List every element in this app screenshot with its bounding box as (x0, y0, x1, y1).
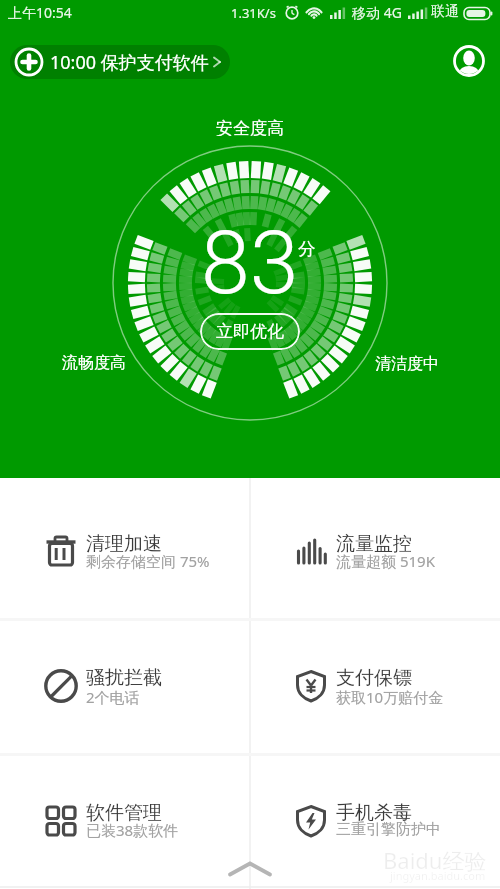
staticText: 移动 4G (352, 3, 402, 22)
staticText: 已装38款软件 (86, 820, 179, 840)
staticText: jingyan.baidu.com (390, 868, 486, 883)
staticText: 流畅度高 (62, 353, 126, 370)
button[interactable]: 立即优化 (200, 313, 300, 350)
staticText: 立即优化 (216, 321, 284, 342)
button[interactable]: 清理加速 (0, 478, 250, 619)
button[interactable]: 骚扰拦截 (0, 619, 250, 754)
staticText: 清洁度中 (375, 354, 439, 371)
button[interactable]: 10:00 保护支付软件 (10, 45, 230, 79)
staticText: 软件管理 (86, 801, 162, 825)
staticText: 手机杀毒 (336, 801, 412, 825)
button[interactable]: 手机杀毒 (250, 754, 500, 889)
button[interactable] (453, 45, 485, 77)
button[interactable]: 软件管理 (0, 754, 250, 889)
staticText: 分 (298, 238, 316, 260)
button[interactable]: 流量监控 (250, 478, 500, 619)
staticText: 83 (201, 211, 299, 301)
staticText: 联通 (431, 3, 459, 21)
button[interactable] (225, 855, 275, 881)
staticText: 上午10:54 (8, 3, 72, 22)
staticText: 流量超额 519K (336, 551, 435, 571)
staticText: 安全度高 (216, 118, 284, 136)
staticText: 三重引擎防护中 (336, 820, 441, 839)
staticText: 流量监控 (336, 532, 412, 556)
staticText: Baidu经验 (383, 845, 487, 875)
staticText: 剩余存储空间 75% (86, 551, 210, 571)
staticText: 10:00 保护支付软件 (50, 50, 209, 75)
staticText: 获取10万赔付金 (336, 687, 444, 707)
staticText: 1.31K/s (231, 4, 276, 22)
button[interactable]: 支付保镖 (250, 619, 500, 754)
staticText: 支付保镖 (336, 666, 412, 690)
staticText: 骚扰拦截 (86, 666, 162, 690)
staticText: 清理加速 (86, 532, 162, 556)
staticText: 2个电话 (86, 687, 140, 707)
